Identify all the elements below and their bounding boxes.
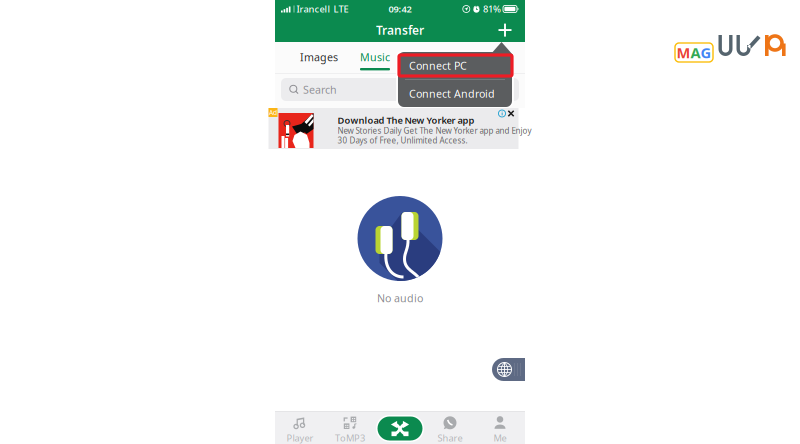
button[interactable]: Connect PC <box>398 52 512 79</box>
staticText: Connect PC <box>409 58 467 73</box>
button[interactable]: Player <box>275 412 325 444</box>
button[interactable]: Connect Android <box>398 80 512 107</box>
staticText: Ad <box>269 108 277 117</box>
button[interactable]: Download The New Yorker app <box>275 108 525 149</box>
staticText: Images <box>300 50 338 64</box>
button[interactable]: Search <box>281 78 519 101</box>
button[interactable]: Transfer <box>375 412 425 444</box>
staticText: Download The New Yorker app <box>337 114 474 126</box>
staticText: Connect Android <box>409 86 495 101</box>
staticText: Transfer <box>376 22 424 38</box>
staticText: ToMP3 <box>335 432 365 444</box>
button[interactable]: Me <box>475 412 525 444</box>
staticText: Irancell <box>296 3 330 15</box>
button[interactable]: ToMP3 <box>325 412 375 444</box>
staticText: 09:42 <box>388 3 411 15</box>
staticText: 30 Days of Free, Unlimited Access. <box>337 135 467 146</box>
staticText: Player <box>286 432 313 444</box>
staticText: A <box>690 43 700 62</box>
staticText: 81% <box>483 3 501 15</box>
staticText: No audio <box>377 291 423 305</box>
staticText: Me <box>493 432 506 444</box>
button[interactable]: Share <box>425 412 475 444</box>
button[interactable]: Web browser <box>492 358 525 381</box>
staticText: M <box>676 43 690 62</box>
button[interactable]: Add connection <box>493 18 517 42</box>
staticText: Music <box>360 50 390 64</box>
staticText: G <box>700 43 711 62</box>
button[interactable]: Images <box>291 42 347 73</box>
staticText: Search <box>303 82 337 97</box>
staticText: Share <box>437 432 462 444</box>
staticText: LTE <box>333 3 348 15</box>
button[interactable]: Music <box>347 42 403 73</box>
staticText: New Stories Daily Get The New Yorker app… <box>337 125 531 136</box>
